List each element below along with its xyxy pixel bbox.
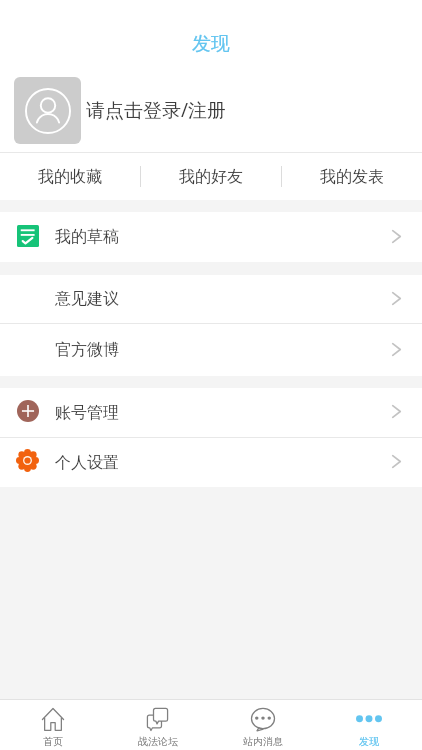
staticText: 官方微博 — [55, 340, 119, 360]
staticText: 个人设置 — [55, 453, 119, 473]
button[interactable]: 站内消息 — [210, 700, 316, 750]
button[interactable]: 账号管理 — [0, 388, 422, 437]
staticText: 我的收藏 — [38, 167, 102, 187]
staticText: 账号管理 — [55, 403, 119, 423]
staticText: 首页 — [43, 735, 63, 748]
button[interactable]: 战法论坛 — [105, 700, 210, 750]
button[interactable]: 发现 — [316, 700, 422, 750]
button[interactable]: 我的收藏 — [0, 153, 140, 200]
button[interactable]: 个人设置 — [0, 438, 422, 487]
button[interactable]: 我的好友 — [141, 153, 281, 200]
staticText: 发现 — [192, 32, 230, 56]
staticText: 请点击登录/注册 — [86, 97, 227, 123]
button[interactable]: 我的发表 — [282, 153, 422, 200]
button[interactable]: 官方微博 — [0, 324, 422, 376]
staticText: 我的发表 — [320, 167, 384, 187]
staticText: 发现 — [359, 735, 379, 748]
button[interactable]: 首页 — [0, 700, 105, 750]
staticText: 意见建议 — [55, 289, 119, 309]
staticText: 我的草稿 — [55, 227, 119, 247]
button[interactable]: 我的草稿 — [0, 212, 422, 262]
staticText: 我的好友 — [179, 167, 243, 187]
button[interactable]: 意见建议 — [0, 275, 422, 323]
staticText: 战法论坛 — [138, 735, 178, 748]
staticText: 站内消息 — [243, 735, 283, 748]
button[interactable]: 请点击登录/注册 — [0, 77, 422, 152]
